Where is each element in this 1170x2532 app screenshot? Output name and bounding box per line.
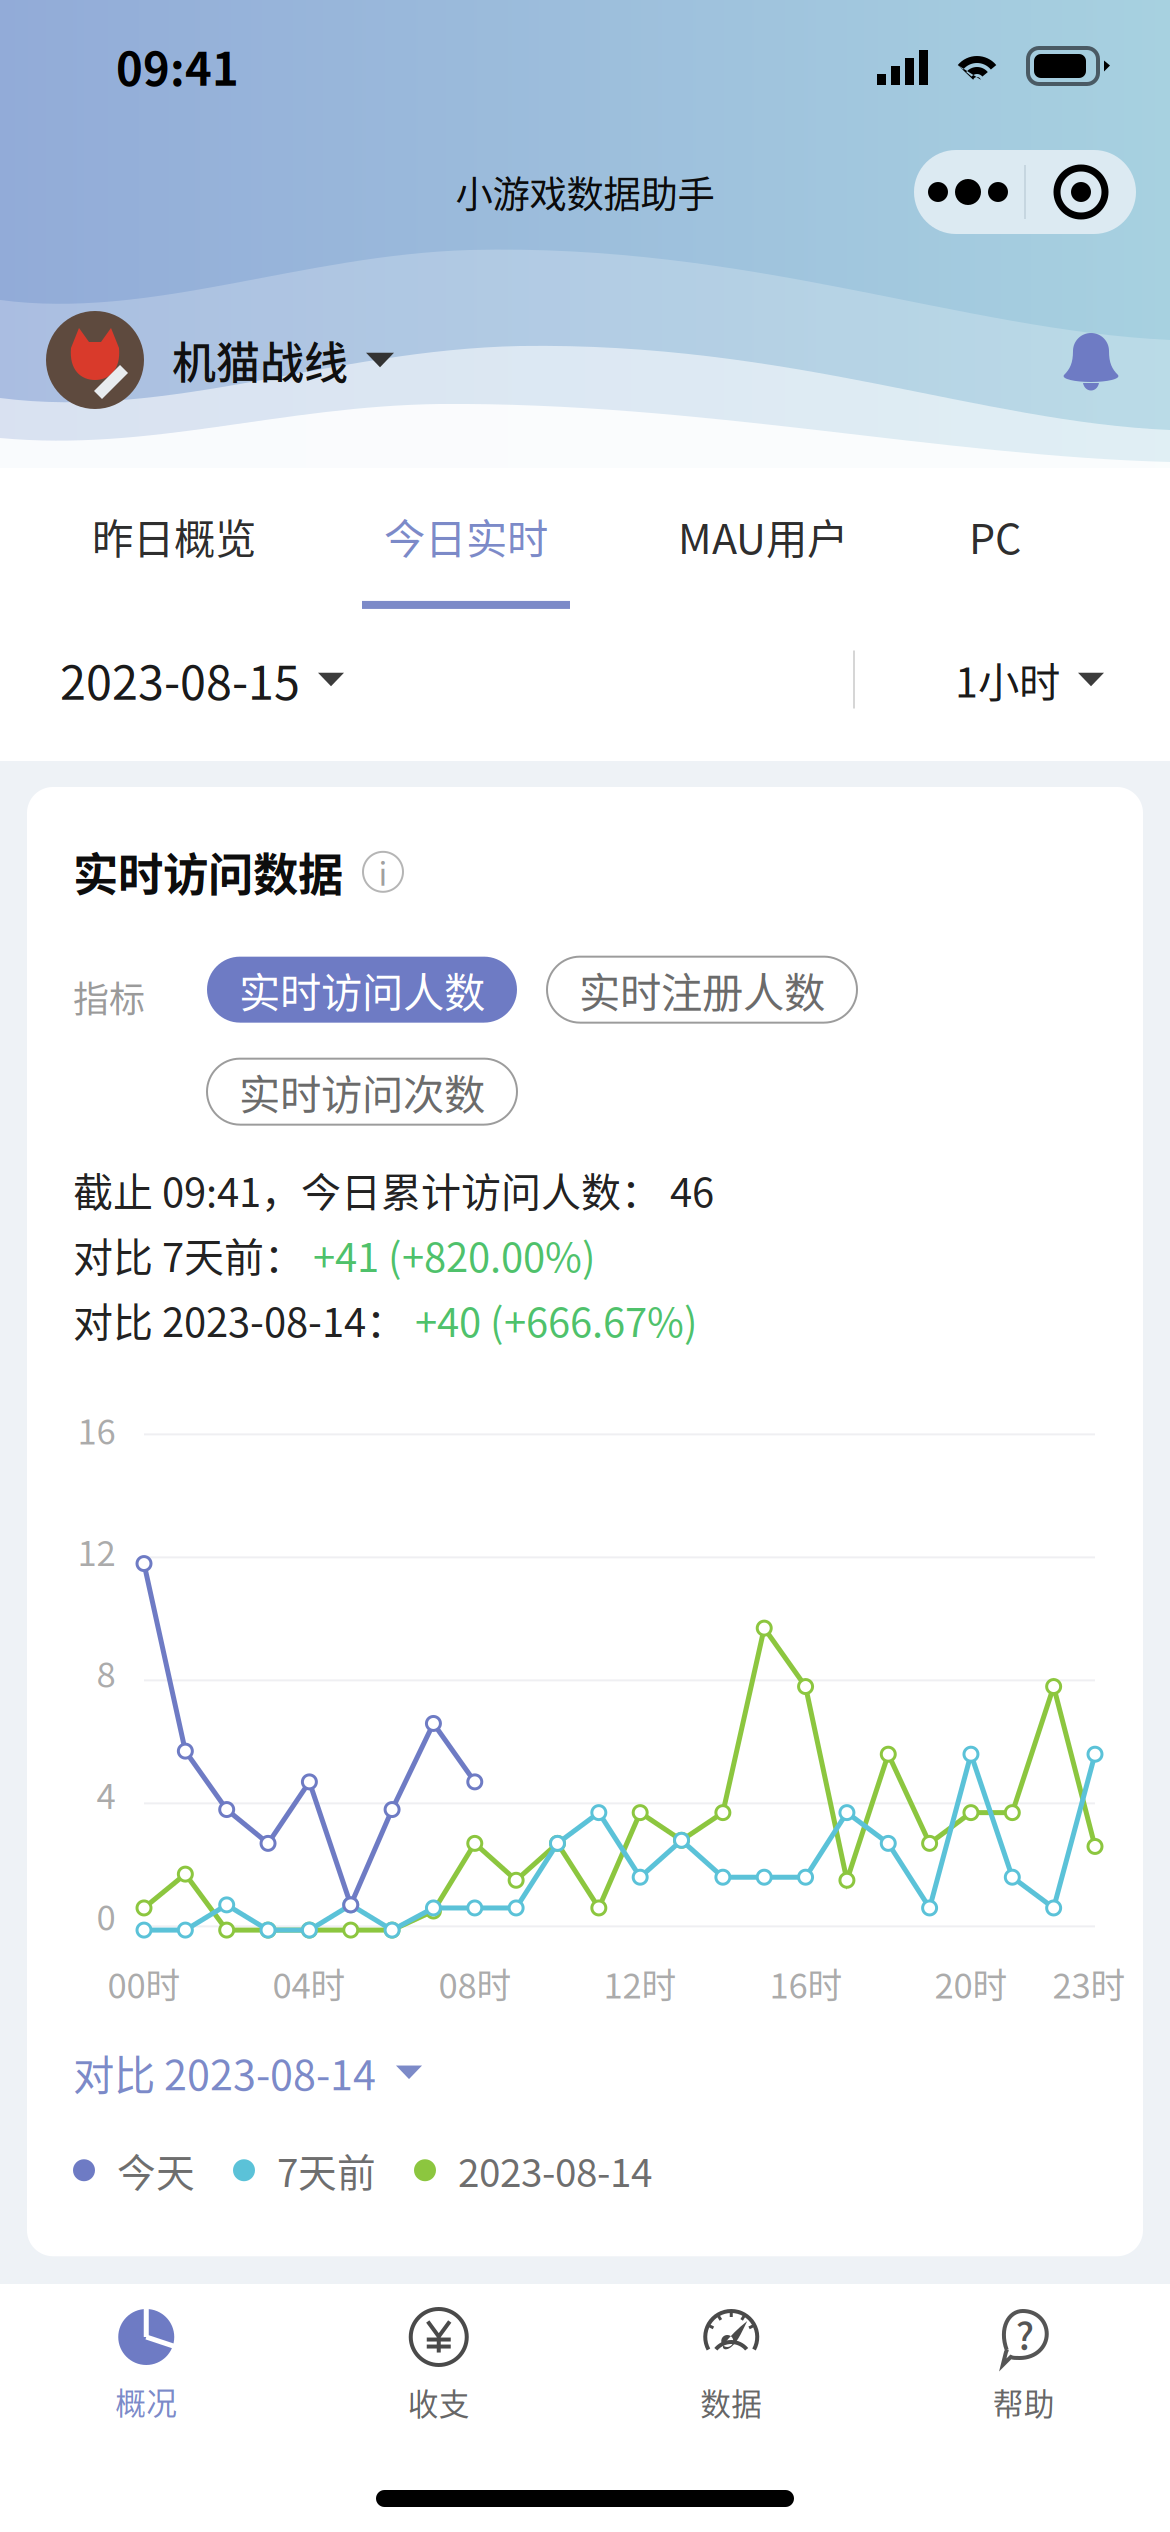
staticText: 截止 09:41，今日累计访问人数： 46 (73, 1161, 714, 1218)
staticText: 对比 2023-08-14： (73, 1290, 415, 1348)
staticText: ? (1016, 2307, 1034, 2361)
button[interactable]: 1小时 (955, 650, 1104, 709)
button[interactable]: 实时访问人数 (207, 957, 517, 1023)
button[interactable]: More (914, 150, 1024, 234)
staticText: +41 (+820.00%) (313, 1226, 596, 1283)
staticText: 昨日概览 (92, 506, 256, 566)
staticText: PC (969, 506, 1021, 566)
staticText: 指标 (73, 971, 145, 1023)
staticText: 概况 (115, 2379, 177, 2423)
button[interactable]: MAU用户 (678, 448, 848, 640)
button[interactable]: ? (877, 2308, 1170, 2424)
staticText: 对比 2023-08-14 (73, 2042, 376, 2102)
staticText: 12时 (603, 1958, 676, 2009)
staticText: 00时 (107, 1958, 180, 2009)
button[interactable]: Notifications (1060, 327, 1122, 393)
staticText: 12 (77, 1526, 115, 1576)
staticText: 1小时 (955, 650, 1060, 709)
staticText: 2023-08-15 (60, 646, 300, 713)
button[interactable]: 实时注册人数 (547, 957, 857, 1023)
staticText: 08时 (438, 1958, 511, 2009)
staticText: 16时 (769, 1958, 842, 2009)
staticText: 16 (77, 1404, 115, 1455)
staticText: 23时 (1052, 1958, 1125, 2009)
staticText: 实时访问次数 (239, 1062, 485, 1122)
staticText: 帮助 (993, 2380, 1055, 2424)
staticText: 机猫战线 (172, 328, 348, 392)
button[interactable]: 收支 (292, 2308, 585, 2424)
staticText: 4 (96, 1769, 115, 1819)
button[interactable]: Close (1026, 150, 1136, 234)
button[interactable]: 数据 (585, 2308, 877, 2424)
staticText: 0 (96, 1890, 115, 1940)
button[interactable]: PC (969, 448, 1021, 640)
staticText: 小游戏数据助手 (455, 165, 714, 219)
button[interactable]: 昨日概览 (92, 448, 256, 640)
staticText: 数据 (700, 2380, 762, 2424)
staticText: +40 (+666.67%) (415, 1290, 698, 1348)
staticText: 8 (96, 1647, 115, 1697)
button[interactable]: 实时访问次数 (207, 1059, 517, 1125)
button[interactable]: 概况 (0, 2309, 292, 2423)
button[interactable]: 2023-08-15 (60, 646, 344, 713)
staticText: 今天 (117, 2142, 195, 2198)
staticText: 实时访问数据 (73, 839, 343, 905)
staticText: 20时 (934, 1958, 1007, 2009)
staticText: 2023-08-14 (458, 2142, 652, 2198)
button[interactable]: 今日实时 (384, 448, 548, 640)
staticText: 实时注册人数 (579, 960, 825, 1020)
staticText: 实时访问人数 (239, 960, 485, 1020)
staticText: 7天前 (277, 2142, 376, 2198)
staticText: MAU用户 (678, 506, 848, 566)
staticText: i (378, 849, 387, 895)
staticText: 09:41 (116, 33, 239, 99)
button[interactable]: 对比 2023-08-14 (73, 2042, 422, 2102)
staticText: 04时 (272, 1958, 345, 2009)
staticText: 对比 7天前： (73, 1226, 313, 1283)
staticText: 今日实时 (384, 506, 548, 566)
staticText: 收支 (408, 2380, 470, 2424)
